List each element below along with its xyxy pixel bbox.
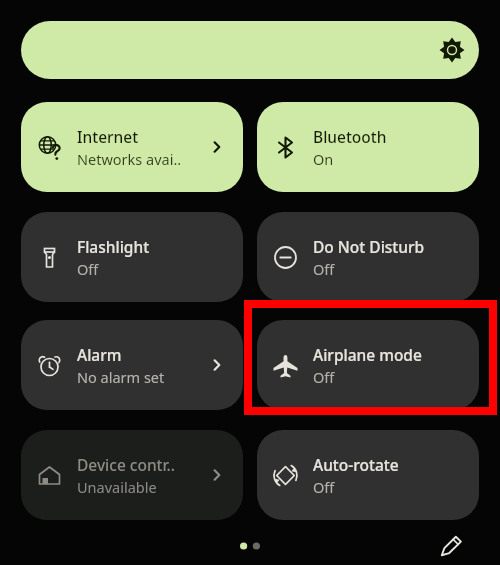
staticText: On (313, 149, 334, 169)
staticText: Off (313, 477, 335, 497)
staticText: Auto-rotate (313, 454, 399, 475)
staticText: Device contr.. (77, 454, 176, 475)
staticText: Off (77, 259, 99, 279)
staticText: Off (313, 367, 335, 387)
staticText: Alarm (77, 344, 122, 365)
button[interactable]: Airplane mode (257, 320, 479, 410)
staticText: Do Not Disturb (313, 236, 425, 257)
button[interactable]: Internet (21, 102, 243, 192)
staticText: Off (313, 259, 335, 279)
button[interactable]: Do Not Disturb (257, 212, 479, 302)
staticText: Unavailable (77, 477, 157, 497)
button[interactable]: Auto-rotate (257, 430, 479, 520)
button[interactable]: Brightness (21, 21, 479, 79)
staticText: Networks avai.. (77, 149, 182, 169)
staticText: Bluetooth (313, 126, 387, 147)
button[interactable]: Bluetooth (257, 102, 479, 192)
staticText: Flashlight (77, 236, 150, 257)
button[interactable]: Device contr.. (21, 430, 243, 520)
staticText: Internet (77, 126, 139, 147)
button[interactable]: Edit tiles (434, 529, 468, 563)
staticText: Airplane mode (313, 344, 422, 365)
button[interactable]: Alarm (21, 320, 243, 410)
staticText: No alarm set (77, 367, 165, 387)
button[interactable]: Flashlight (21, 212, 243, 302)
